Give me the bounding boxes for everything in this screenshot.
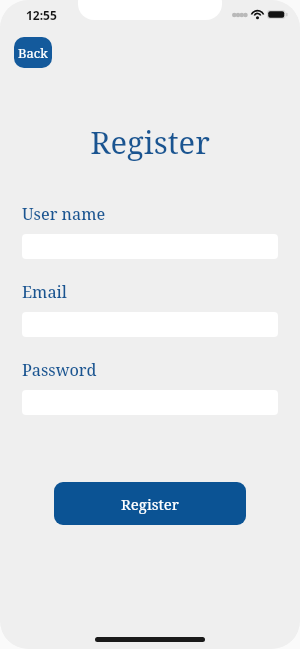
staticText: Register bbox=[121, 494, 179, 514]
staticText: Email bbox=[22, 281, 67, 303]
staticText: Back bbox=[18, 44, 48, 62]
staticText: Password bbox=[22, 359, 97, 381]
button[interactable]: Back bbox=[14, 37, 52, 68]
staticText: Register bbox=[90, 121, 210, 163]
staticText: 12:55 bbox=[26, 7, 57, 23]
button[interactable]: Register bbox=[54, 482, 246, 525]
staticText: User name bbox=[22, 203, 106, 225]
